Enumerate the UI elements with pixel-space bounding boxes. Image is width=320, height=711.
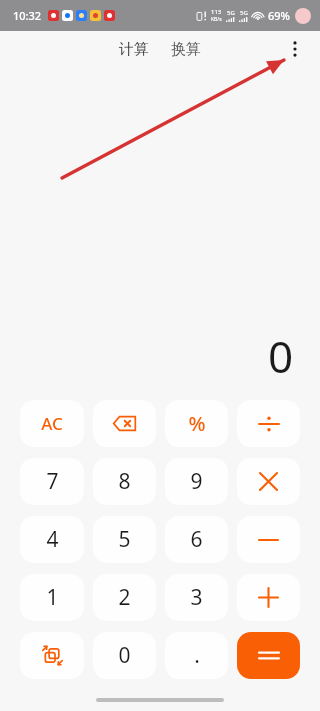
button[interactable]: 3 — [165, 574, 228, 621]
button[interactable]: Minus — [237, 516, 300, 563]
button[interactable]: 换算 — [165, 35, 207, 64]
button[interactable]: 7 — [20, 458, 84, 505]
button[interactable]: 2 — [93, 574, 156, 621]
button[interactable]: . — [165, 632, 228, 679]
button[interactable]: 8 — [93, 458, 156, 505]
button[interactable]: AC — [20, 400, 84, 447]
staticText: 3 — [190, 583, 203, 612]
button[interactable]: More options — [278, 32, 312, 66]
button[interactable]: 0 — [93, 632, 156, 679]
staticText: 2 — [118, 583, 131, 612]
button[interactable]: Equals — [237, 632, 300, 679]
staticText: 4 — [46, 525, 59, 554]
staticText: 113 — [211, 8, 222, 16]
staticText: 69% — [268, 8, 290, 23]
button[interactable]: 9 — [165, 458, 228, 505]
staticText: 9 — [190, 467, 203, 496]
staticText: . — [194, 641, 200, 670]
staticText: 0 — [268, 326, 294, 386]
button[interactable]: % — [165, 400, 228, 447]
button[interactable]: Multiply — [237, 458, 300, 505]
staticText: 计算 — [119, 40, 149, 59]
button[interactable]: 1 — [20, 574, 84, 621]
button[interactable]: Convert units — [20, 632, 84, 679]
staticText: 5G — [240, 9, 248, 17]
button[interactable]: Divide — [237, 400, 300, 447]
staticText: 0 — [118, 641, 131, 670]
button[interactable]: 4 — [20, 516, 84, 563]
button[interactable]: Plus — [237, 574, 300, 621]
staticText: % — [188, 410, 206, 437]
staticText: KB/s — [211, 16, 222, 23]
staticText: 8 — [118, 467, 131, 496]
button[interactable]: 6 — [165, 516, 228, 563]
staticText: 1 — [46, 583, 59, 612]
staticText: 6 — [190, 525, 203, 554]
staticText: AC — [41, 412, 63, 435]
staticText: 5G — [227, 9, 235, 17]
staticText: 7 — [46, 467, 59, 496]
staticText: 换算 — [171, 40, 201, 59]
staticText: 10:32 — [13, 8, 42, 23]
staticText: 5 — [118, 525, 131, 554]
button[interactable]: Backspace — [93, 400, 156, 447]
button[interactable]: 计算 — [113, 35, 155, 64]
button[interactable]: 5 — [93, 516, 156, 563]
